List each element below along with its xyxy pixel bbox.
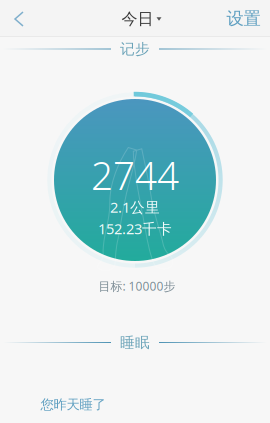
staticText: 152.23千卡: [98, 219, 172, 238]
button[interactable]: Back: [0, 1, 41, 37]
staticText: 睡眠: [120, 333, 150, 351]
staticText: 今日: [121, 9, 153, 29]
staticText: 2744: [91, 149, 179, 201]
staticText: 2.1公里: [110, 197, 160, 217]
staticText: 记步: [120, 40, 150, 58]
button[interactable]: 今日: [115, 1, 167, 37]
staticText: 目标: 10000步: [98, 278, 175, 294]
staticText: 设置: [226, 8, 260, 29]
button[interactable]: 设置: [221, 0, 265, 36]
staticText: 您昨天睡了: [40, 396, 105, 413]
